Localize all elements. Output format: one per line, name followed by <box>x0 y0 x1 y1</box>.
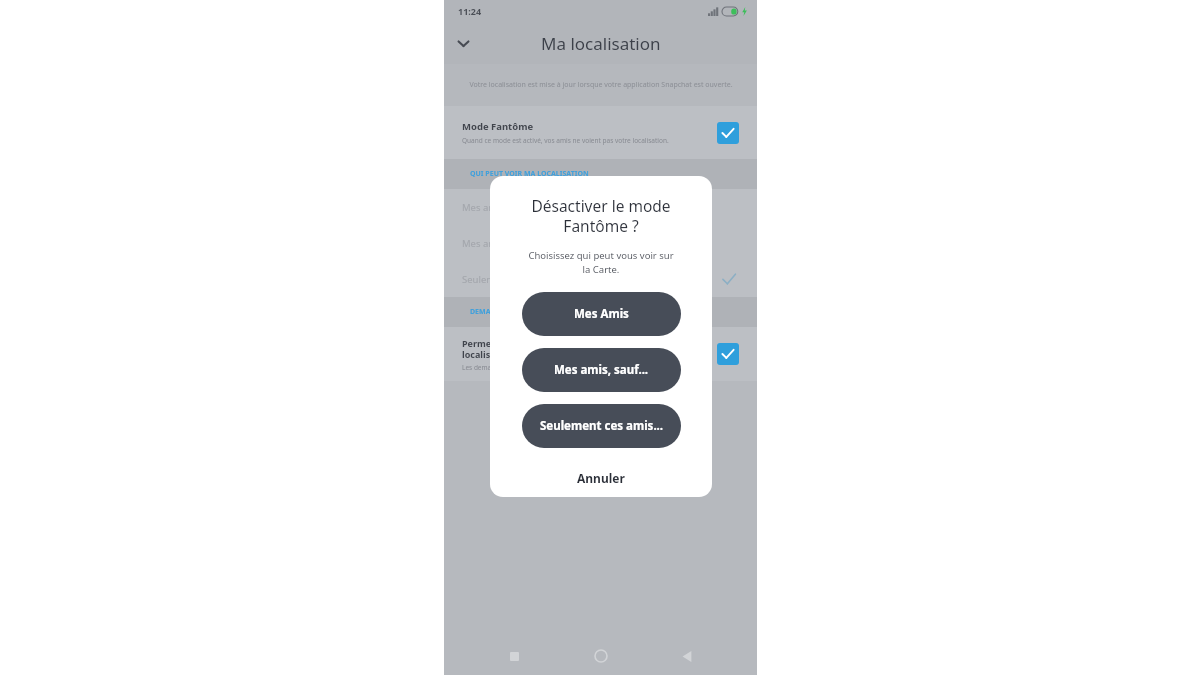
button[interactable]: Fermer <box>446 26 480 60</box>
button[interactable]: Mes amis, sauf... <box>444 225 757 261</box>
button[interactable]: Mes amis, sauf... <box>522 348 681 392</box>
staticText: Désactiver le mode Fantôme ? <box>531 195 671 237</box>
staticText: Les demandes apparaissent dans le chat. <box>462 363 588 372</box>
button[interactable]: Activer <box>717 122 739 144</box>
button[interactable]: Mode Fantôme <box>444 106 757 159</box>
button[interactable]: Recents <box>497 639 531 673</box>
staticText: Mes amis, sauf... <box>462 237 536 250</box>
button[interactable]: Activer <box>717 343 739 365</box>
button[interactable]: Seulement ces amis... <box>522 404 681 448</box>
staticText: QUI PEUT VOIR MA LOCALISATION <box>470 169 589 179</box>
staticText: Mes amis <box>462 201 505 214</box>
button[interactable]: Mes Amis <box>522 292 681 336</box>
button[interactable]: Seulement ces amis... <box>444 261 757 297</box>
staticText: Mes amis, sauf... <box>554 362 649 378</box>
staticText: Ma localisation <box>541 32 661 55</box>
staticText: DEMANDES DE LOCALISATION <box>470 307 574 317</box>
staticText: Choisissez qui peut vous voir sur la Car… <box>528 249 674 275</box>
button[interactable]: Home <box>584 639 618 673</box>
staticText: Mes Amis <box>574 306 629 322</box>
staticText: Votre localisation est mise à jour lorsq… <box>469 80 733 90</box>
staticText: Quand ce mode est activé, vos amis ne vo… <box>462 136 669 145</box>
button[interactable]: Permettre aux amis de demander ma locali… <box>444 327 757 381</box>
staticText: 11:24 <box>458 5 482 17</box>
staticText: Annuler <box>577 470 625 486</box>
button[interactable]: Mes amis <box>444 189 757 225</box>
button[interactable]: Back <box>670 639 704 673</box>
staticText: Permettre aux amis de demander ma locali… <box>462 337 677 360</box>
staticText: Seulement ces amis... <box>540 418 664 434</box>
staticText: Seulement ces amis... <box>462 273 559 286</box>
button[interactable]: Annuler <box>490 463 712 493</box>
staticText: Mode Fantôme <box>462 120 534 133</box>
